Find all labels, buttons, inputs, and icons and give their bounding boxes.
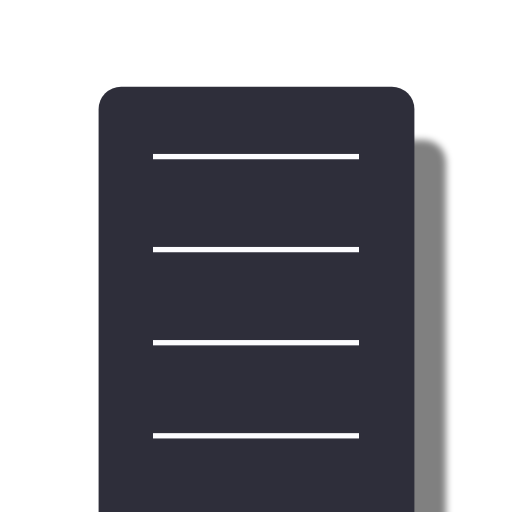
button[interactable]: Open note <box>99 87 415 512</box>
